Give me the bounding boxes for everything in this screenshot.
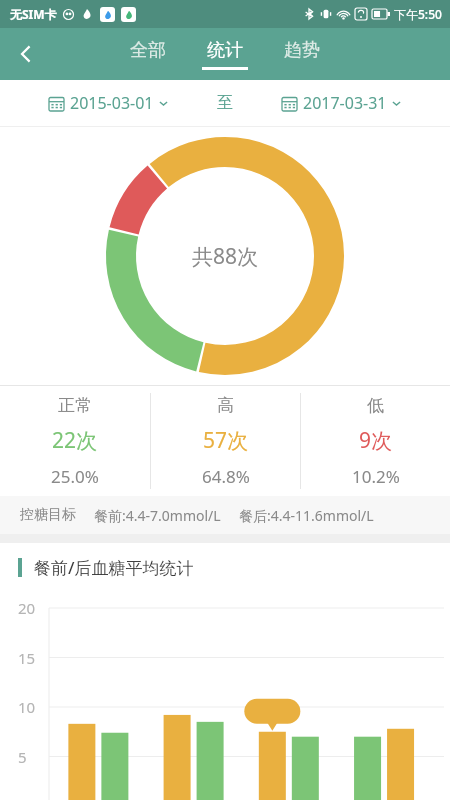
staticText: 2017-03-31	[303, 92, 387, 114]
staticText: 15	[18, 648, 36, 668]
staticText: 下午5:50	[394, 6, 442, 22]
staticText: 9次	[359, 426, 393, 455]
staticText: 10	[18, 697, 36, 717]
staticText: 2015-03-01	[70, 92, 154, 114]
staticText: 5	[18, 747, 27, 767]
staticText: 57次	[203, 426, 249, 455]
staticText: 餐后:4.4-11.6mmol/L	[239, 506, 374, 525]
staticText: 低	[367, 395, 384, 416]
button[interactable]: 全部	[124, 28, 172, 80]
staticText: 统计	[207, 39, 243, 62]
button[interactable]: Back	[0, 28, 52, 80]
button[interactable]: 统计	[196, 28, 254, 80]
staticText: 64.8%	[202, 465, 250, 488]
staticText: 控糖目标	[20, 506, 76, 524]
staticText: 高	[217, 395, 234, 416]
button[interactable]: 低	[301, 386, 450, 496]
button[interactable]: 高	[151, 386, 300, 496]
staticText: 共88次	[192, 242, 259, 271]
staticText: 餐前:4.4-7.0mmol/L	[94, 506, 221, 525]
staticText: 无SIM卡	[10, 6, 57, 22]
button[interactable]: 趋势	[278, 28, 326, 80]
button[interactable]: 正常	[0, 386, 150, 496]
staticText: 22次	[52, 426, 98, 455]
staticText: 10.2%	[352, 465, 400, 488]
staticText: 25.0%	[51, 465, 99, 488]
button[interactable]: 2015-03-01	[0, 80, 217, 126]
staticText: 趋势	[284, 39, 320, 62]
button[interactable]: 2017-03-31	[233, 80, 450, 126]
staticText: 至	[217, 93, 233, 113]
staticText: 餐前/后血糖平均统计	[34, 556, 194, 579]
staticText: 全部	[130, 39, 166, 62]
staticText: 正常	[58, 395, 92, 416]
staticText: 20	[18, 598, 36, 618]
